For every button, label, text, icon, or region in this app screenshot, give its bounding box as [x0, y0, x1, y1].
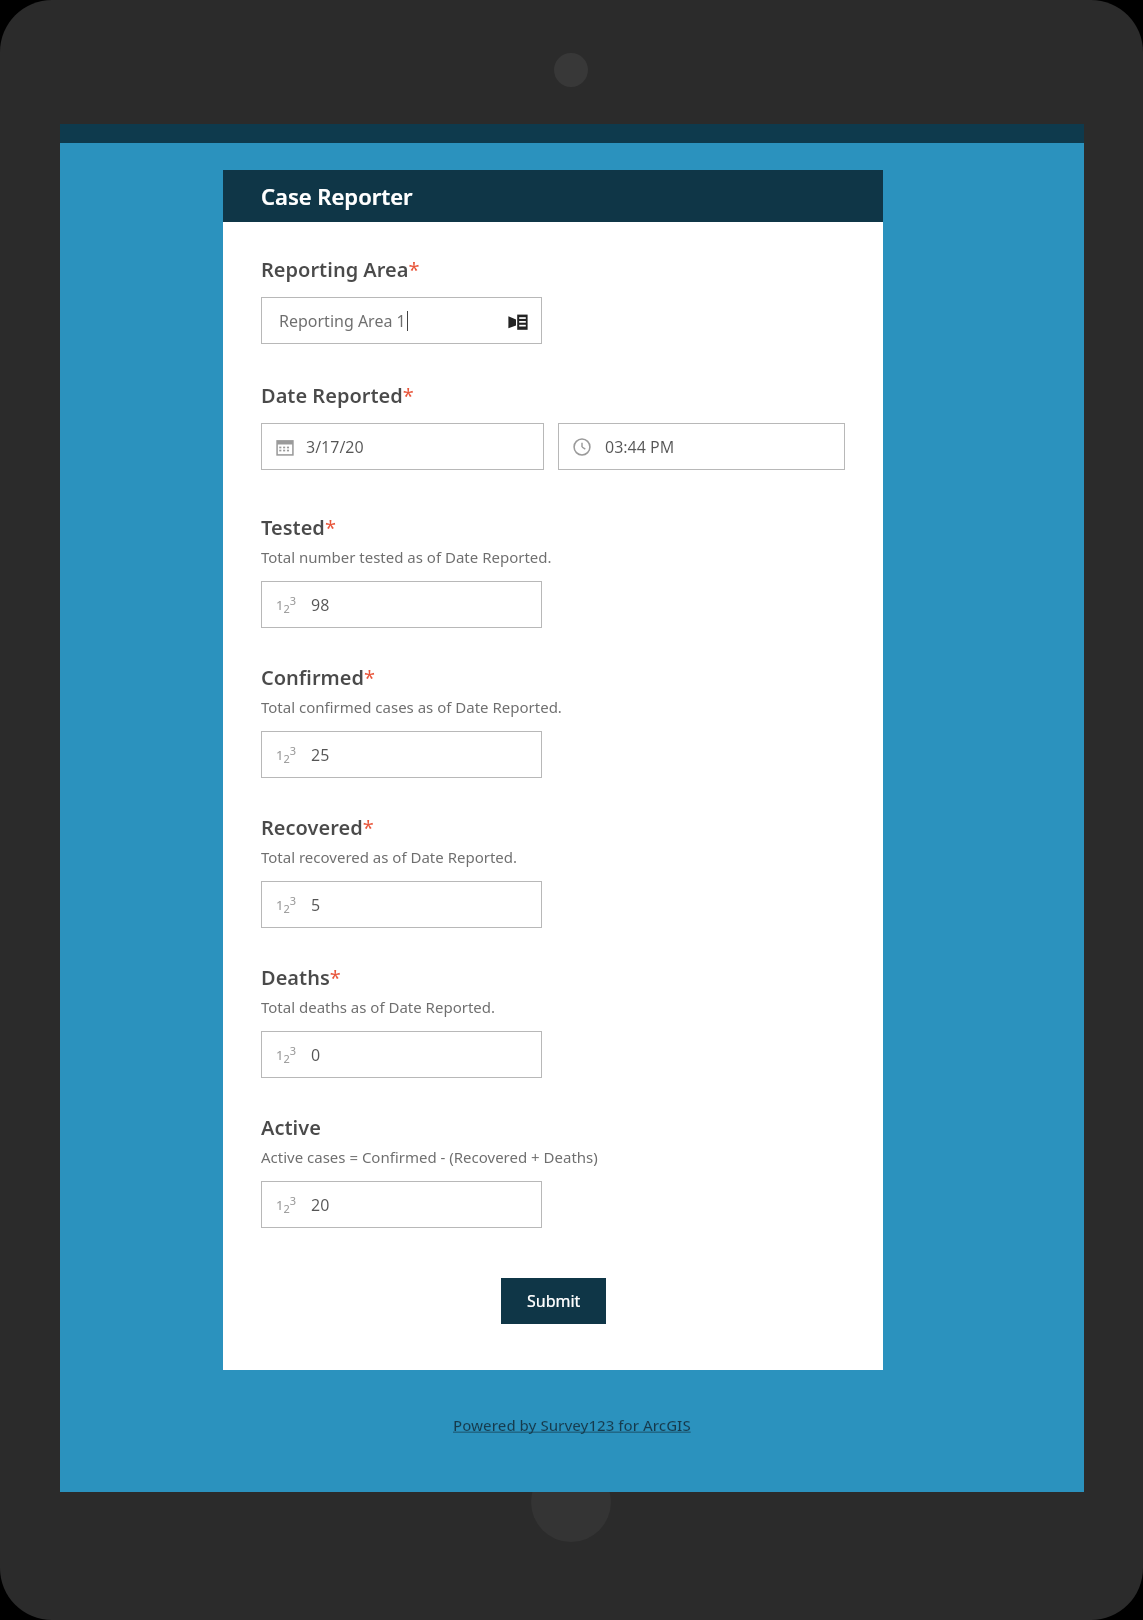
staticText: Date Reported*: [261, 382, 414, 409]
button[interactable]: Powered by Survey123 for ArcGIS: [445, 1411, 699, 1439]
staticText: 123: [276, 1193, 297, 1216]
other: Number input: [276, 893, 297, 916]
other: Choose from list: [508, 311, 528, 331]
other: Number input: [276, 1193, 297, 1216]
button[interactable]: Calendar: [261, 423, 544, 470]
staticText: Case Reporter: [261, 181, 413, 211]
staticText: 20: [311, 1194, 330, 1216]
staticText: Total number tested as of Date Reported.: [261, 547, 552, 567]
staticText: Recovered*: [261, 814, 374, 841]
other: Number input: [276, 593, 297, 616]
staticText: Tested*: [261, 514, 336, 541]
button[interactable]: Number input: [261, 881, 542, 928]
staticText: Active: [261, 1114, 321, 1141]
staticText: 123: [276, 593, 297, 616]
button[interactable]: Submit: [501, 1278, 606, 1324]
staticText: 03:44 PM: [605, 436, 675, 458]
staticText: Deaths*: [261, 964, 341, 991]
staticText: Active cases = Confirmed - (Recovered + …: [261, 1147, 598, 1167]
other: Number input: [276, 1043, 297, 1066]
staticText: 123: [276, 1043, 297, 1066]
button[interactable]: Reporting Area 1: [261, 297, 542, 344]
staticText: 123: [276, 743, 297, 766]
staticText: 5: [311, 894, 321, 916]
staticText: 3/17/20: [306, 436, 364, 458]
staticText: 0: [311, 1044, 321, 1066]
button[interactable]: Number input: [261, 731, 542, 778]
staticText: 25: [311, 744, 330, 766]
staticText: Submit: [527, 1290, 581, 1312]
staticText: Total confirmed cases as of Date Reporte…: [261, 697, 562, 717]
other: Number input: [276, 743, 297, 766]
staticText: Reporting Area*: [261, 256, 420, 283]
staticText: Confirmed*: [261, 664, 376, 691]
button[interactable]: Clock: [558, 423, 845, 470]
staticText: 123: [276, 893, 297, 916]
staticText: 98: [311, 594, 330, 616]
staticText: Total deaths as of Date Reported.: [261, 997, 496, 1017]
staticText: Total recovered as of Date Reported.: [261, 847, 518, 867]
button[interactable]: Number input: [261, 1181, 542, 1228]
staticText: Powered by Survey123 for ArcGIS: [453, 1415, 691, 1435]
button[interactable]: Number input: [261, 1031, 542, 1078]
other: Calendar: [276, 438, 294, 456]
button[interactable]: Number input: [261, 581, 542, 628]
other: Clock: [573, 438, 591, 456]
staticText: Reporting Area 1: [279, 310, 406, 332]
